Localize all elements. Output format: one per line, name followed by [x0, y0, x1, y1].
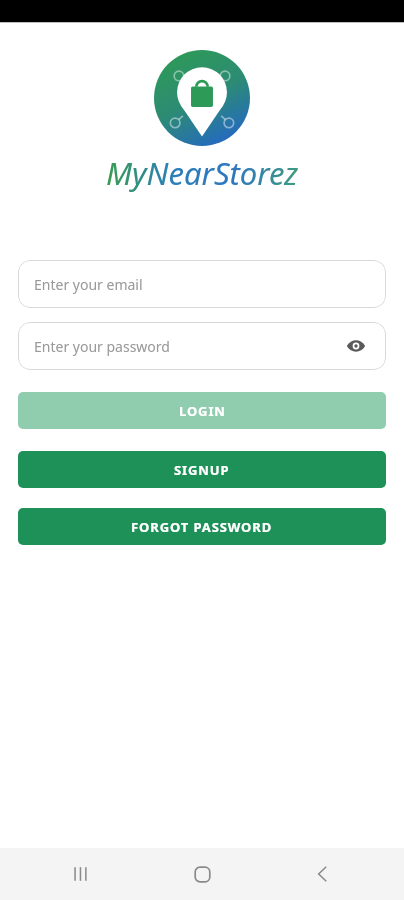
- staticText: SIGNUP: [174, 461, 230, 479]
- staticText: Enter your email: [34, 275, 370, 294]
- staticText: MyNearStorez: [106, 152, 298, 194]
- button[interactable]: Home: [162, 850, 242, 898]
- staticText: Enter your password: [34, 337, 342, 356]
- staticText: FORGOT PASSWORD: [131, 518, 273, 536]
- button[interactable]: SIGNUP: [18, 451, 386, 488]
- button[interactable]: Back: [283, 850, 363, 898]
- button[interactable]: FORGOT PASSWORD: [18, 508, 386, 545]
- button[interactable]: Enter your email: [18, 260, 386, 308]
- staticText: LOGIN: [179, 402, 226, 420]
- button[interactable]: Show password: [342, 332, 370, 360]
- button[interactable]: LOGIN: [18, 392, 386, 429]
- button[interactable]: Recent apps: [41, 850, 121, 898]
- button[interactable]: Enter your password: [18, 322, 386, 370]
